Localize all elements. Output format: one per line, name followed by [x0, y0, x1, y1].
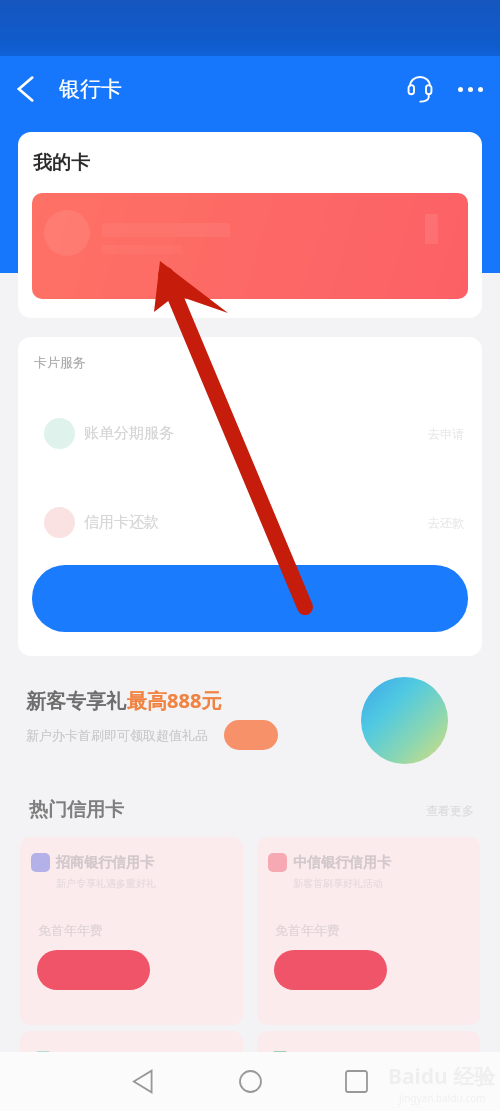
staticText: 我的卡	[33, 151, 90, 175]
staticText: 信用卡还款	[84, 513, 159, 532]
button[interactable]	[274, 950, 387, 990]
staticText: 免首年年费	[38, 922, 103, 938]
button[interactable]	[32, 565, 468, 632]
staticText: 最高888元	[127, 687, 222, 714]
staticText: 热门信用卡	[29, 798, 124, 822]
button[interactable]: 信用卡还款	[44, 506, 464, 538]
staticText: 去申请	[428, 426, 464, 441]
button[interactable]: Recent apps	[330, 1052, 382, 1111]
staticText: 账单分期服务	[84, 424, 174, 443]
button[interactable]: More options	[448, 58, 492, 120]
staticText: 中信银行信用卡	[293, 854, 391, 872]
staticText: 去还款	[428, 515, 464, 530]
button[interactable]: Home	[224, 1052, 276, 1111]
button[interactable]: Back	[0, 58, 50, 120]
button[interactable]	[257, 1031, 480, 1071]
staticText: 免首年年费	[275, 922, 340, 938]
staticText: 卡片服务	[34, 354, 86, 370]
staticText: Baidu 经验	[388, 1062, 496, 1091]
staticText: 银行卡	[59, 76, 122, 102]
button[interactable]	[32, 193, 468, 299]
button[interactable]	[20, 1031, 243, 1071]
button[interactable]: 中信银行信用卡	[257, 837, 480, 1025]
staticText: 新户办卡首刷即可领取超值礼品	[26, 727, 208, 743]
button[interactable]: 账单分期服务	[44, 417, 464, 449]
button[interactable]: Back	[117, 1052, 169, 1111]
staticText: 新户专享礼遇多重好礼	[56, 877, 156, 890]
button[interactable]: Customer service	[392, 58, 448, 120]
button[interactable]	[37, 950, 150, 990]
button[interactable]: 查看更多	[426, 803, 474, 818]
button[interactable]: 新客专享礼	[0, 662, 500, 790]
button[interactable]: 招商银行信用卡	[20, 837, 243, 1025]
staticText: jingyan.baidu.com	[399, 1091, 486, 1105]
staticText: 招商银行信用卡	[56, 854, 154, 872]
staticText: 新客专享礼	[26, 689, 126, 714]
staticText: 新客首刷享好礼活动	[293, 877, 383, 890]
